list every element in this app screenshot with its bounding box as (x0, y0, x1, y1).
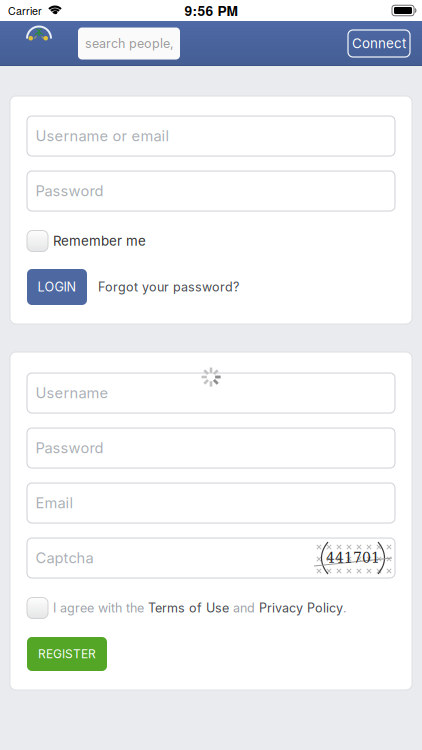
staticText: Captcha (35, 549, 93, 567)
staticText: 441701 (326, 550, 380, 566)
button[interactable]: Connect (348, 30, 422, 57)
staticText: Username (35, 384, 108, 402)
button[interactable]: Username or email (27, 116, 395, 156)
button[interactable]: REGISTER (27, 637, 107, 671)
button[interactable]: Search (0, 27, 180, 59)
button[interactable]: Password (27, 428, 395, 468)
staticText: Terms of Use (148, 600, 229, 616)
staticText: REGISTER (38, 647, 96, 661)
staticText: . (343, 600, 347, 616)
button[interactable]: Email (27, 483, 395, 523)
staticText: Password (35, 439, 103, 457)
button[interactable]: LOGIN (27, 269, 87, 305)
staticText: search people, (85, 36, 174, 51)
staticText: I agree with the (53, 600, 148, 616)
button[interactable]: Forgot your password? (98, 279, 239, 295)
staticText: Remember me (53, 233, 146, 249)
button[interactable]: Remember me (27, 231, 146, 251)
button[interactable]: Username (27, 373, 395, 413)
staticText: Carrier (8, 3, 42, 18)
staticText: Forgot your password? (98, 279, 239, 295)
staticText: Connect (352, 35, 406, 51)
staticText: Email (35, 494, 73, 512)
staticText: 9:56 PM (184, 1, 237, 20)
staticText: Password (35, 182, 103, 200)
button[interactable]: Home (0, 21, 52, 41)
staticText: and (229, 600, 259, 616)
button[interactable]: I agree with the Terms of Use and Privac… (27, 598, 347, 618)
staticText: LOGIN (37, 279, 76, 295)
staticText: Privacy Policy (259, 600, 343, 616)
button[interactable]: Captcha (27, 538, 395, 578)
staticText: Username or email (35, 127, 169, 145)
button[interactable]: Password (27, 171, 395, 211)
